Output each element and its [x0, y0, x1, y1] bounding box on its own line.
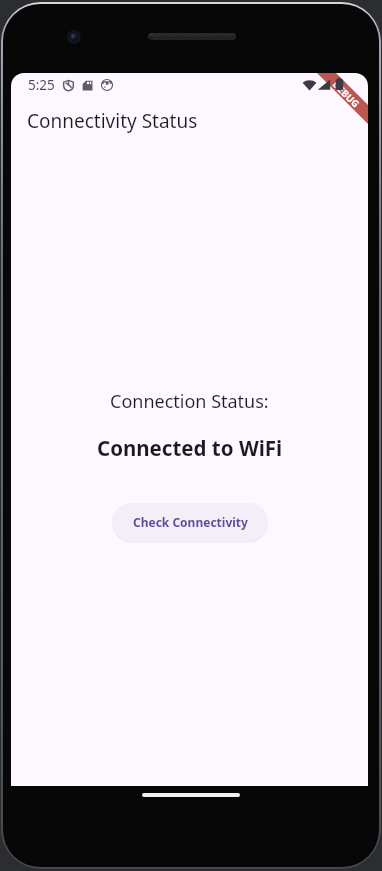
other: Play Protect: [63, 80, 74, 91]
staticText: Connectivity Status: [27, 108, 198, 134]
other: Storage: [82, 80, 93, 91]
staticText: Connected to WiFi: [97, 434, 283, 462]
staticText: DEBUG: [330, 78, 362, 110]
other: Account: [101, 79, 113, 91]
button[interactable]: Check Connectivity: [112, 503, 268, 541]
other: Wi-Fi: [302, 78, 317, 93]
staticText: 5:25: [28, 76, 55, 94]
other: Mobile signal: [317, 78, 331, 92]
other: Battery: [332, 77, 346, 91]
staticText: Check Connectivity: [133, 514, 248, 530]
staticText: Connection Status:: [110, 389, 269, 414]
